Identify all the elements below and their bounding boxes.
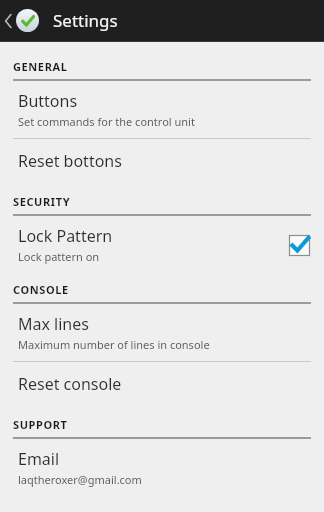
staticText: Lock Pattern bbox=[18, 225, 113, 247]
button[interactable]: Lock Pattern enabled bbox=[288, 234, 310, 256]
button[interactable]: Reset bottons bbox=[0, 139, 324, 185]
staticText: SUPPORT bbox=[13, 417, 68, 432]
staticText: laqtheroxer@gmail.com bbox=[18, 472, 142, 487]
button[interactable]: Buttons bbox=[0, 81, 324, 138]
staticText: SECURITY bbox=[13, 194, 71, 209]
staticText: Lock pattern on bbox=[18, 249, 100, 264]
staticText: GENERAL bbox=[13, 59, 68, 74]
button[interactable]: Max lines bbox=[0, 304, 324, 361]
staticText: Reset bottons bbox=[18, 150, 122, 172]
staticText: Email bbox=[18, 448, 60, 470]
staticText: Max lines bbox=[18, 313, 89, 335]
staticText: Maximum number of lines in console bbox=[18, 337, 210, 352]
button[interactable]: Email bbox=[0, 439, 324, 496]
button[interactable]: Reset console bbox=[0, 362, 324, 408]
staticText: Set commands for the control unit bbox=[18, 114, 195, 129]
staticText: Reset console bbox=[18, 373, 122, 395]
staticText: Buttons bbox=[18, 90, 78, 112]
button[interactable]: Lock Pattern bbox=[0, 216, 324, 273]
button[interactable]: Navigate up bbox=[0, 0, 43, 41]
staticText: Settings bbox=[53, 9, 118, 32]
staticText: CONSOLE bbox=[13, 282, 69, 297]
